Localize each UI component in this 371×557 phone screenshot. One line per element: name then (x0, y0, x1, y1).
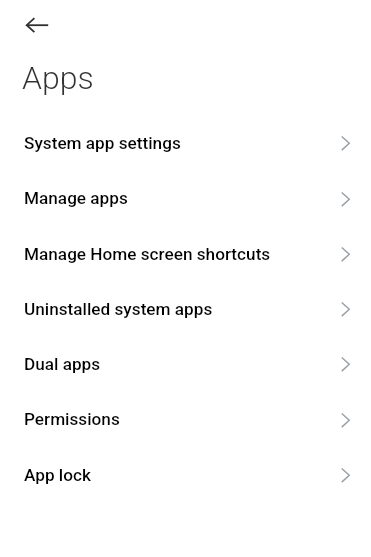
button[interactable]: Dual apps (0, 336, 371, 391)
button[interactable]: Back (10, 2, 55, 47)
staticText: Apps (22, 59, 94, 97)
button[interactable]: App lock (0, 447, 371, 502)
button[interactable]: Uninstalled system apps (0, 281, 371, 336)
button[interactable]: Manage Home screen shortcuts (0, 226, 371, 281)
staticText: Manage Home screen shortcuts (24, 244, 271, 264)
staticText: System app settings (24, 133, 181, 153)
staticText: Dual apps (24, 354, 101, 374)
staticText: Uninstalled system apps (24, 299, 213, 319)
staticText: Permissions (24, 409, 120, 429)
staticText: App lock (24, 465, 91, 485)
staticText: Manage apps (24, 188, 128, 208)
button[interactable]: System app settings (0, 115, 371, 170)
button[interactable]: Manage apps (0, 170, 371, 226)
button[interactable]: Permissions (0, 391, 371, 447)
